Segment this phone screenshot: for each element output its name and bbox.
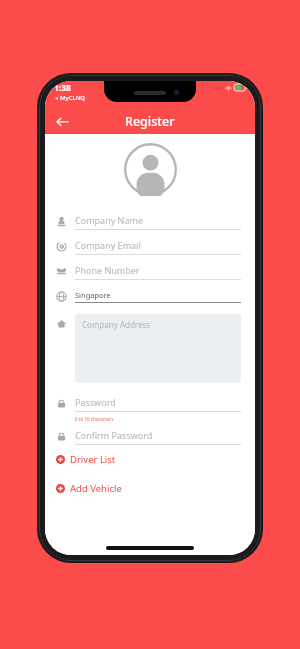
staticText: Confirm Password [75,429,153,441]
button[interactable]: Profile photo [124,143,177,196]
button[interactable]: Password [45,391,255,424]
button[interactable]: Company Name [45,209,255,234]
staticText: Phone Number [75,264,140,276]
staticText: Company Name [75,214,144,226]
staticText: 6 to 16 characters [75,416,114,422]
button[interactable]: Add Vehicle [56,480,241,496]
button[interactable]: Confirm Password [45,424,255,449]
staticText: Add Vehicle [70,482,122,495]
staticText: Driver List [70,453,116,466]
button[interactable]: Phone Number [45,259,255,284]
button[interactable]: Company Address [56,314,241,383]
button[interactable]: Back [49,108,75,134]
button[interactable]: Singapore [45,284,255,309]
staticText: Singapore [75,290,111,300]
staticText: Company Address [82,319,151,330]
staticText: 1:38 [54,82,71,94]
button[interactable]: Driver List [56,451,241,467]
staticText: Register [125,113,175,130]
staticText: MyCLNQ [60,94,86,102]
staticText: Company Email [75,239,141,251]
staticText: Password [75,396,116,408]
button[interactable]: Company Email [45,234,255,259]
